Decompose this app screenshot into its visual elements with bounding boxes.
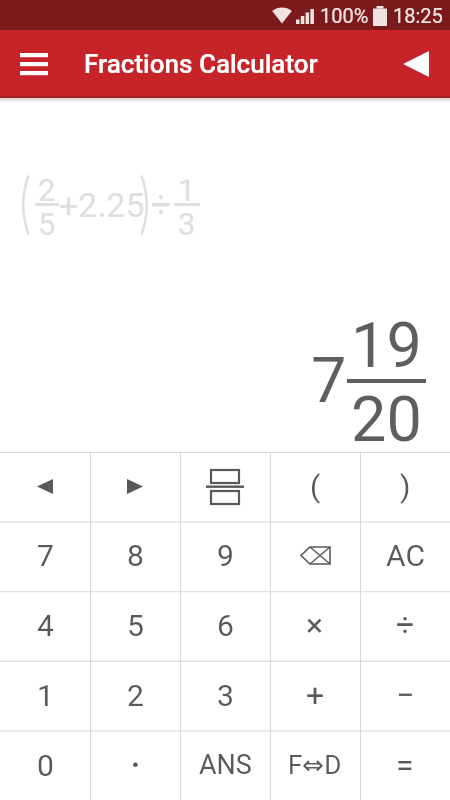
button[interactable]: 9 <box>180 521 270 590</box>
button[interactable]: 1 <box>0 660 90 730</box>
button[interactable]: − <box>360 660 450 730</box>
staticText: 1 <box>178 172 196 203</box>
staticText: 2 <box>38 172 56 203</box>
button[interactable]: + <box>270 660 360 730</box>
button[interactable]: 5 <box>90 590 180 660</box>
button[interactable]: ÷ <box>360 590 450 660</box>
staticText: = <box>396 746 414 784</box>
staticText: ÷ <box>151 184 172 226</box>
button[interactable] <box>0 452 90 521</box>
button[interactable]: F⇔D <box>270 730 360 800</box>
staticText: 5 <box>38 206 56 237</box>
staticText: 2 <box>127 678 144 713</box>
button[interactable]: ANS <box>180 730 270 800</box>
button[interactable]: ( <box>270 452 360 521</box>
button[interactable]: ) <box>360 452 450 521</box>
button[interactable]: 0 <box>0 730 90 800</box>
staticText: 6 <box>217 608 234 643</box>
staticText: 0 <box>37 748 54 783</box>
staticText: 3 <box>217 678 234 713</box>
staticText: 9 <box>217 538 234 573</box>
staticText: 20 <box>351 383 422 452</box>
staticText: ) <box>400 469 411 504</box>
staticText: 3 <box>178 206 196 237</box>
staticText: · <box>130 741 141 790</box>
staticText: ( <box>310 469 321 504</box>
button[interactable]: 4 <box>0 590 90 660</box>
button[interactable]: 8 <box>90 521 180 590</box>
staticText: ÷ <box>396 606 415 644</box>
button[interactable]: 6 <box>180 590 270 660</box>
button[interactable]: · <box>90 730 180 800</box>
staticText: − <box>396 676 415 714</box>
button[interactable]: 7 <box>0 521 90 590</box>
staticText: 100% <box>320 4 369 27</box>
staticText: × <box>306 606 324 644</box>
staticText: 4 <box>37 608 54 643</box>
staticText: ANS <box>199 749 252 781</box>
button[interactable]: 2 <box>90 660 180 730</box>
button[interactable] <box>90 452 180 521</box>
staticText: Fractions Calculator <box>84 49 318 79</box>
staticText: 19 <box>351 309 422 379</box>
staticText: 8 <box>127 538 144 573</box>
button[interactable] <box>180 452 270 521</box>
button[interactable]: = <box>360 730 450 800</box>
staticText: 7 <box>37 538 54 573</box>
staticText: F⇔D <box>288 750 342 780</box>
button[interactable]: AC <box>360 521 450 590</box>
staticText: 1 <box>37 678 54 713</box>
button[interactable] <box>12 42 56 86</box>
staticText: + <box>306 676 325 714</box>
staticText: 18:25 <box>393 4 443 27</box>
staticText: 5 <box>127 608 144 643</box>
staticText: +2.25 <box>59 185 145 225</box>
button[interactable] <box>394 42 438 86</box>
staticText: 7 <box>311 344 347 418</box>
button[interactable]: 3 <box>180 660 270 730</box>
staticText: AC <box>386 538 425 573</box>
button[interactable]: × <box>270 590 360 660</box>
button[interactable] <box>270 521 360 590</box>
